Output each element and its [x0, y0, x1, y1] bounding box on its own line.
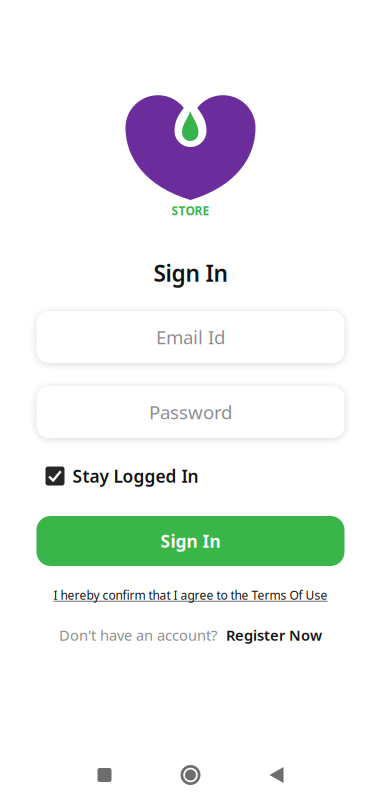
button[interactable]: Back [233, 760, 319, 790]
staticText: I hereby confirm that I agree to the Ter… [53, 587, 327, 603]
staticText: STORE [171, 202, 209, 218]
button[interactable]: Sign In [36, 516, 344, 566]
button[interactable]: Stay Logged In [36, 465, 344, 487]
staticText: Stay Logged In [72, 464, 198, 487]
button[interactable]: Recent apps [61, 760, 147, 790]
button[interactable]: Register Now [226, 625, 322, 645]
staticText: Email Id [156, 325, 225, 349]
button[interactable]: Home [147, 760, 233, 790]
staticText: Password [149, 400, 232, 424]
staticText: Register Now [226, 625, 322, 645]
button[interactable]: I hereby confirm that I agree to the Ter… [20, 588, 360, 602]
staticText: Sign In [160, 529, 220, 552]
staticText: Sign In [153, 258, 227, 288]
staticText: Don't have an account? [59, 625, 217, 645]
